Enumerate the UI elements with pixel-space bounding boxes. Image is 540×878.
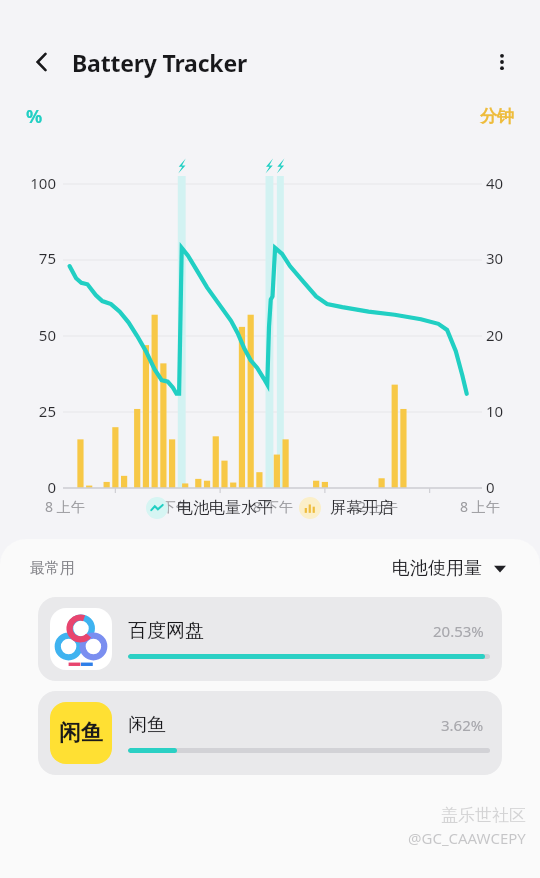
staticText: 闲鱼 [128,713,166,737]
staticText: 百度网盘 [128,619,204,643]
staticText: 50 [38,325,56,345]
staticText: 8 下午 [253,497,293,516]
button[interactable]: More options [480,40,524,84]
staticText: 10 [486,401,504,421]
button[interactable]: 闲鱼 [38,691,502,775]
staticText: 2 上午 [358,497,398,516]
staticText: 20.53% [433,621,484,641]
staticText: 屏幕开启 [330,498,394,518]
staticText: 0 [486,477,495,497]
button[interactable]: 电池电量水平 [144,497,275,519]
button[interactable]: Back [20,40,64,84]
staticText: @GC_CAAWCEPY [408,828,526,848]
button[interactable]: 百度网盘 [38,597,502,681]
staticText: 0 [47,477,56,497]
staticText: 100 [30,173,56,193]
staticText: 2 下午 [150,497,190,516]
staticText: 8 上午 [45,497,85,516]
staticText: 盖乐世社区 [441,805,526,826]
staticText: 40 [486,173,504,193]
staticText: 20 [486,325,504,345]
staticText: 8 上午 [460,497,500,516]
staticText: % [26,104,43,129]
staticText: 电池电量水平 [177,498,273,518]
staticText: Battery Tracker [72,47,248,78]
button[interactable]: 屏幕开启 [297,497,396,519]
staticText: 闲鱼 [59,719,103,747]
staticText: 电池使用量 [392,557,482,580]
staticText: 分钟 [480,106,514,127]
staticText: 25 [38,401,56,421]
staticText: 最常用 [30,559,75,578]
staticText: 3.62% [441,715,484,735]
button[interactable]: 电池使用量 [388,553,510,584]
staticText: 30 [486,248,504,268]
staticText: 75 [38,248,56,268]
